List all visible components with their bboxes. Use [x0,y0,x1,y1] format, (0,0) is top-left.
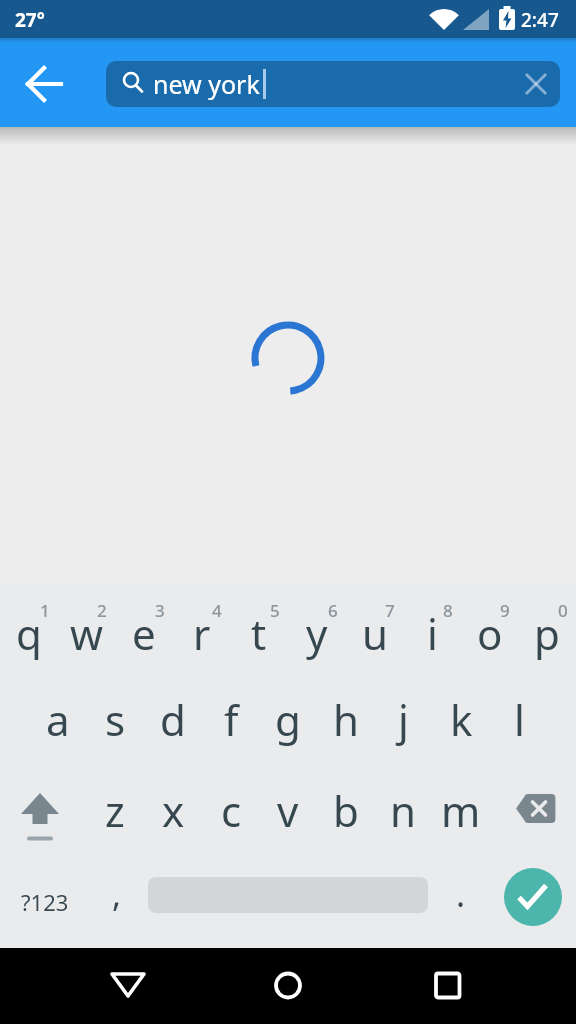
button[interactable]: s [86,674,144,765]
button[interactable]: , [88,856,145,947]
staticText: 2:47 [521,7,559,33]
staticText: , [112,871,122,917]
button[interactable]: b [317,765,375,856]
staticText: 1 [40,599,50,619]
staticText: 8 [443,599,453,619]
button[interactable]: e [115,583,173,674]
button[interactable]: x [144,765,202,856]
staticText: e [132,605,156,662]
button[interactable]: l [490,674,548,765]
staticText: 6 [328,599,338,619]
button[interactable]: t [230,583,288,674]
staticText: . [456,871,466,917]
staticText: t [251,605,267,662]
staticText: v [277,782,299,839]
staticText: l [514,691,525,748]
staticText: x [162,782,185,839]
staticText: i [427,605,438,662]
button[interactable]: z [86,765,144,856]
staticText: w [70,605,104,662]
staticText: a [46,691,70,748]
staticText: k [450,691,473,748]
button[interactable]: c [202,765,260,856]
staticText: h [333,691,359,748]
button[interactable] [514,62,558,106]
button[interactable]: ?123 [14,856,76,947]
staticText: 7 [385,599,395,619]
button[interactable] [424,961,472,1009]
button[interactable]: w [58,583,116,674]
staticText: n [390,782,416,839]
staticText: 9 [500,599,510,619]
button[interactable] [17,56,73,112]
staticText: b [333,782,359,839]
staticText: m [441,782,481,839]
button[interactable]: p [518,583,576,674]
button[interactable]: m [432,765,490,856]
button[interactable]: v [259,765,317,856]
staticText: 4 [212,599,222,619]
button[interactable] [490,765,576,856]
button[interactable]: d [144,674,202,765]
staticText: ?123 [21,887,69,917]
button[interactable]: f [202,674,260,765]
button[interactable]: k [432,674,490,765]
button[interactable]: i [403,583,461,674]
button[interactable]: j [374,674,432,765]
button[interactable]: y [288,583,346,674]
staticText: o [477,605,503,662]
staticText: s [105,691,126,748]
button[interactable]: h [317,674,375,765]
staticText: y [306,605,328,662]
staticText: g [275,691,301,748]
staticText: new york [153,67,260,101]
staticText: 3 [155,599,165,619]
button[interactable]: new york [106,61,560,107]
staticText: f [224,691,239,748]
button[interactable]: q [0,583,58,674]
staticText: 5 [270,599,280,619]
staticText: 0 [558,599,568,619]
staticText: u [362,605,388,662]
staticText: 2 [97,599,107,619]
button[interactable] [264,961,312,1009]
button[interactable]: u [346,583,404,674]
button[interactable]: a [29,674,87,765]
button[interactable]: . [432,856,489,947]
staticText: c [221,782,242,839]
staticText: p [534,605,560,662]
button[interactable] [0,765,86,856]
button[interactable]: o [461,583,519,674]
staticText: j [398,691,409,748]
staticText: z [105,782,125,839]
button[interactable]: n [374,765,432,856]
staticText: d [160,691,186,748]
staticText: 27° [15,7,45,33]
staticText: q [16,605,42,662]
button[interactable]: r [173,583,231,674]
staticText: r [193,605,211,662]
button[interactable]: g [259,674,317,765]
button[interactable] [504,868,562,926]
button[interactable] [104,961,152,1009]
